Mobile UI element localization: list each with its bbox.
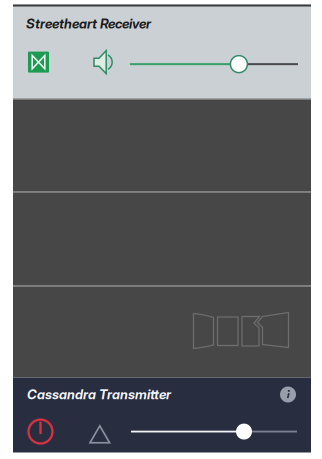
button[interactable]: Alert	[89, 425, 111, 445]
button[interactable]: Receiver volume	[230, 56, 247, 73]
button[interactable]: Mute	[93, 50, 114, 75]
staticText: Cassandra Transmitter	[27, 386, 171, 402]
button[interactable]: Information	[280, 386, 296, 402]
button[interactable]: Receiver status	[28, 52, 49, 73]
staticText: Streetheart Receiver	[26, 15, 151, 32]
button[interactable]: Transmitter level	[236, 424, 252, 440]
button[interactable]: Power	[28, 419, 53, 444]
